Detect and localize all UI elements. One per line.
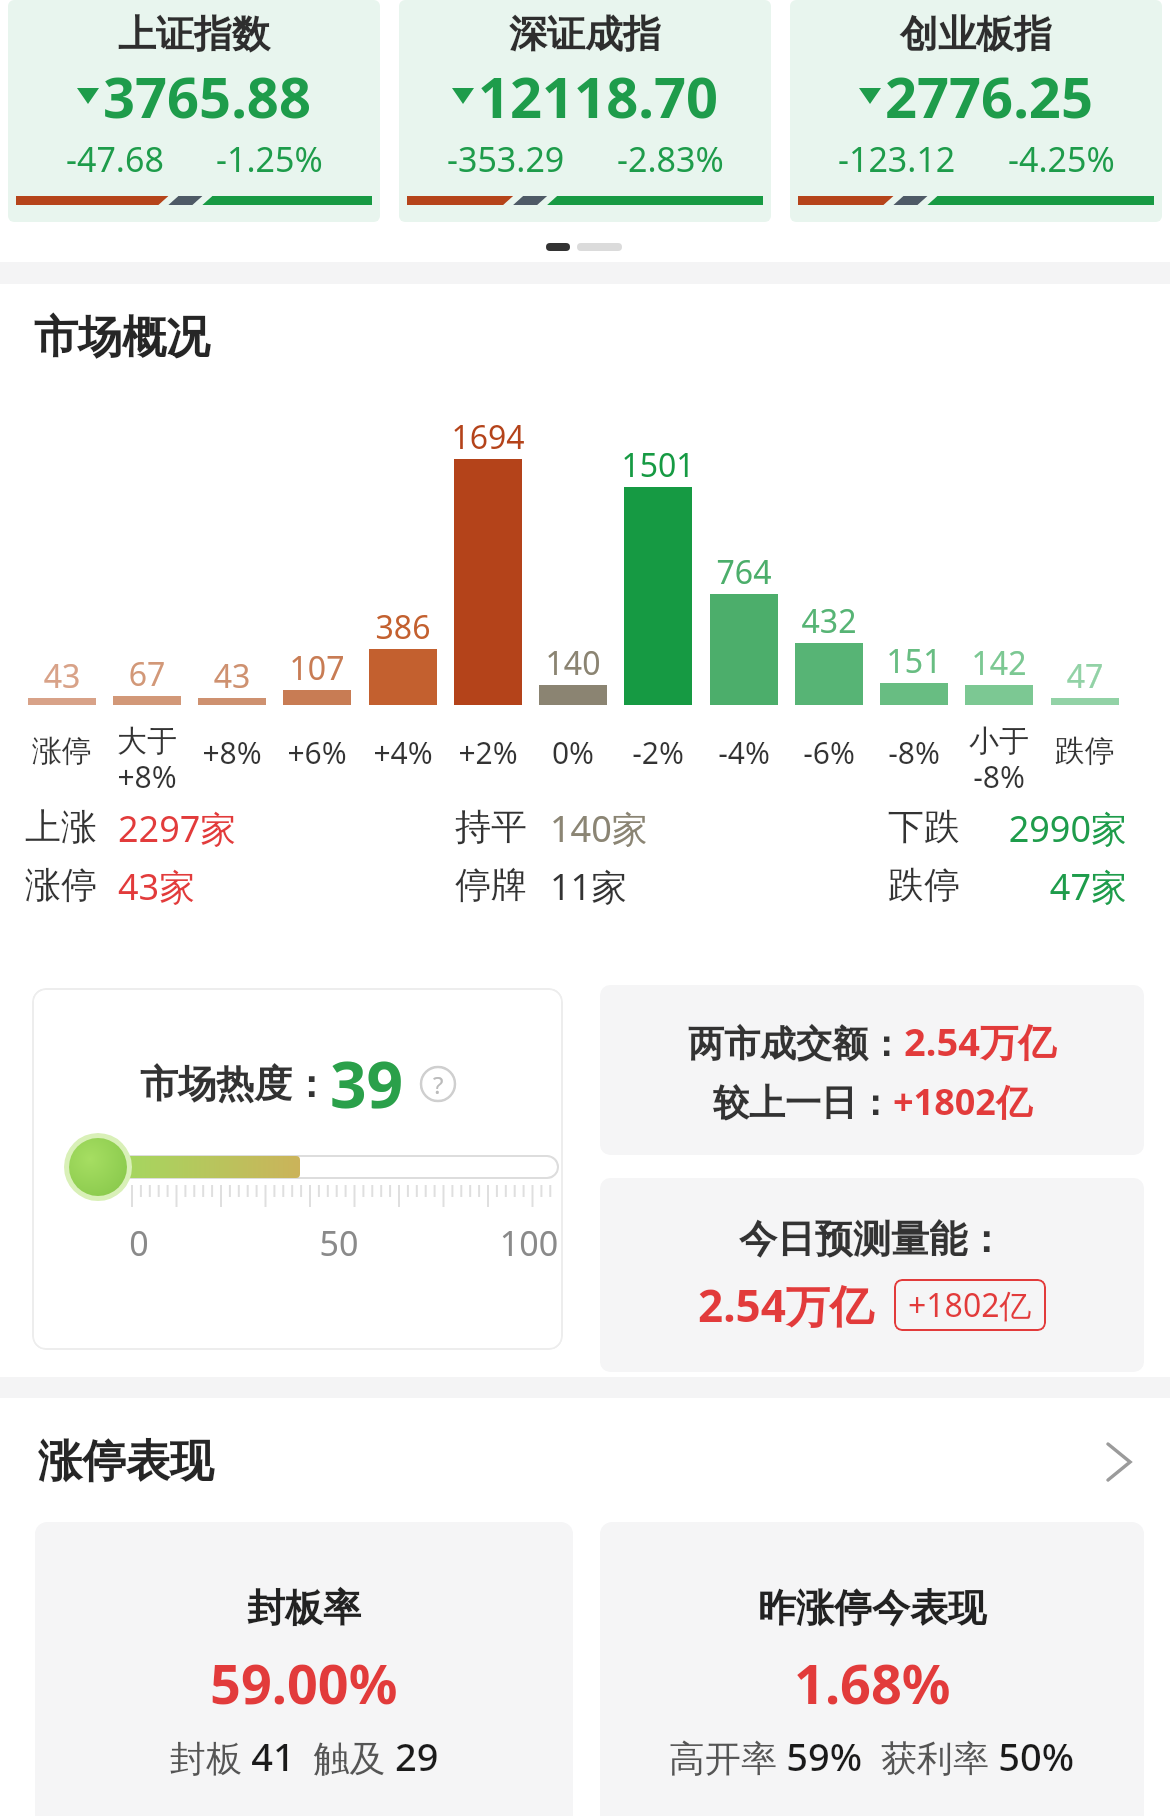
staticText: 432 [679,599,979,643]
staticText: -4% [664,732,824,773]
staticText: -8% [834,732,994,773]
staticText: 高开率 59% 获利率 50% [669,1730,1075,1782]
staticText: 1694 [338,415,638,459]
staticText: 39 [330,1040,404,1127]
staticText: 47家 [827,862,1127,911]
staticText: 两市成交额：2.54万亿 [688,1015,1056,1067]
staticText: 43家 [118,862,196,911]
staticText: 100 [379,1220,563,1266]
staticText: 151 [764,639,1064,683]
staticText: -2% [578,732,738,773]
staticText: 上证指数 [118,10,270,58]
staticText: 1501 [508,443,808,487]
staticText: 2.54万亿 [698,1275,874,1335]
staticText: 较上一日：+1802亿 [713,1077,1032,1126]
staticText: 深证成指 [509,10,661,58]
staticText: 43 [82,654,382,698]
staticText: 50 [189,1220,489,1266]
staticText: 43 [0,654,212,698]
button[interactable]: 创业板指 [790,0,1162,222]
staticText: 创业板指 [900,10,1052,58]
staticText: 封板 41 触及 29 [170,1730,439,1782]
staticText: 386 [253,605,553,649]
staticText: 下跌 [888,804,960,849]
staticText: 107 [167,646,467,690]
staticText: 11家 [550,862,628,911]
staticText: 昨涨停今表现 [758,1584,986,1632]
button[interactable]: 深证成指 [399,0,771,222]
staticText: 跌停 [888,862,960,907]
staticText: 涨停 [0,732,142,770]
staticText: 764 [594,550,894,594]
button[interactable]: 两市成交额：2.54万亿 [600,985,1144,1155]
staticText: +4% [323,732,483,773]
staticText: 140 [423,641,723,685]
staticText: 3765.88 [103,58,311,134]
staticText: 涨停表现 [38,1434,214,1489]
staticText: +6% [237,732,397,773]
staticText: 67 [0,652,297,696]
staticText: 12118.70 [478,58,718,134]
staticText: 142 [849,641,1149,685]
staticText: 停牌 [455,862,527,907]
staticText: ? [433,1068,444,1101]
staticText: +8% [152,732,312,773]
staticText: 140家 [550,804,648,853]
button[interactable]: 市场热度： [32,988,563,1350]
button[interactable]: 昨涨停今表现 [600,1522,1144,1816]
staticText: 市场概况 [34,310,210,365]
staticText: -353.29 [447,136,565,182]
staticText: -1.25% [216,136,323,182]
staticText: 封板率 [247,1584,361,1632]
staticText: 今日预测量能： [739,1215,1005,1263]
staticText: 2297家 [118,804,237,853]
staticText: 2990家 [827,804,1127,853]
staticText: 跌停 [1005,732,1165,770]
button[interactable]: 今日预测量能： [600,1178,1144,1372]
staticText: 小于 -8% [919,722,1079,797]
staticText: -123.12 [838,136,956,182]
staticText: -6% [749,732,909,773]
staticText: 大于 +8% [67,722,227,797]
staticText: -2.83% [617,136,724,182]
staticText: +2% [408,732,568,773]
staticText: -4.25% [1008,136,1115,182]
staticText: 59.00% [210,1646,398,1720]
staticText: 47 [935,654,1170,698]
staticText: 2776.25 [885,58,1093,134]
staticText: 涨停 [25,862,97,907]
staticText: 市场热度： [140,1060,330,1108]
button[interactable]: 封板率 [35,1522,573,1816]
staticText: +1802亿 [908,1283,1032,1327]
staticText: 1.68% [794,1646,951,1720]
staticText: -47.68 [66,136,164,182]
staticText: 0 [32,1220,289,1266]
staticText: 持平 [455,804,527,849]
staticText: 0% [493,732,653,773]
staticText: 上涨 [25,804,97,849]
button[interactable]: 上证指数 [8,0,380,222]
